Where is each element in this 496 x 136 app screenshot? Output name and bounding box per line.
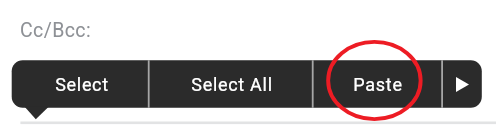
button[interactable]: Select xyxy=(12,60,149,108)
staticText: Select xyxy=(55,74,109,95)
button[interactable]: Select All xyxy=(149,60,313,108)
staticText: Cc/Bcc: xyxy=(20,19,92,42)
staticText: Paste xyxy=(353,74,403,95)
button[interactable]: More options xyxy=(442,60,482,108)
button[interactable]: Paste xyxy=(313,60,442,108)
staticText: Select All xyxy=(191,74,273,95)
